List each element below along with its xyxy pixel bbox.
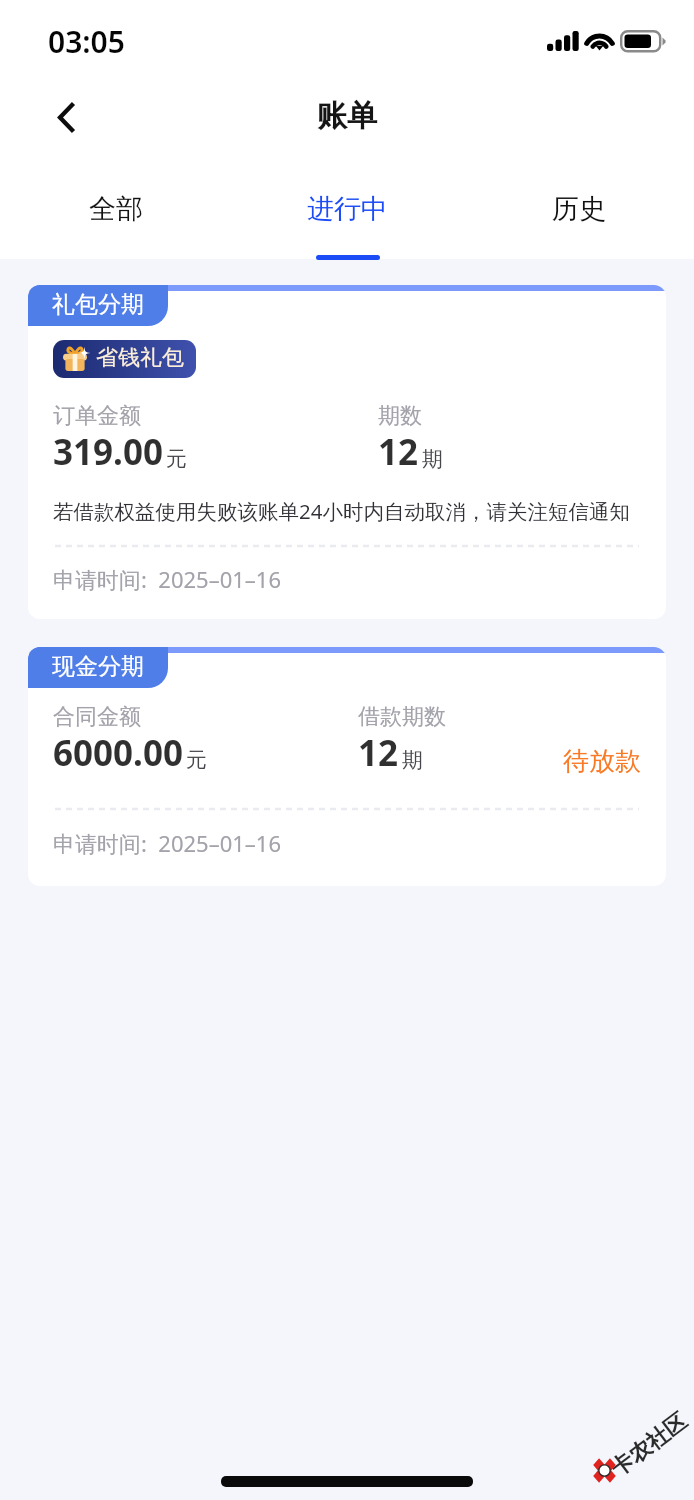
button[interactable]: 现金分期 [28, 647, 666, 886]
staticText: 若借款权益使用失败该账单24小时内自动取消，请关注短信通知 [53, 497, 630, 525]
button[interactable]: 全部 [0, 162, 232, 262]
staticText: 借款期数 [358, 703, 446, 731]
staticText: 合同金额 [53, 703, 141, 731]
staticText: 卡农社区 [605, 1407, 692, 1483]
staticText: 全部 [89, 192, 143, 226]
staticText: 待放款 [563, 745, 641, 778]
staticText: 申请时间: 2025–01–16 [53, 828, 282, 858]
staticText: 元 [166, 446, 187, 472]
button[interactable]: 礼包分期 [28, 285, 666, 619]
staticText: 现金分期 [52, 652, 144, 681]
staticText: 历史 [552, 192, 606, 226]
button[interactable]: 历史 [463, 162, 694, 262]
staticText: 期 [402, 747, 423, 773]
staticText: 申请时间: 2025–01–16 [53, 564, 282, 594]
staticText: 账单 [317, 97, 377, 135]
button[interactable]: 进行中 [232, 162, 463, 262]
staticText: 期 [422, 446, 443, 472]
staticText: 12 [358, 729, 399, 777]
staticText: 03:05 [48, 21, 125, 62]
button[interactable]: Back [38, 89, 94, 145]
staticText: 省钱礼包 [96, 344, 184, 372]
staticText: 订单金额 [53, 402, 141, 430]
staticText: 12 [378, 428, 419, 476]
staticText: 319.00 [53, 428, 163, 476]
staticText: 进行中 [307, 192, 388, 226]
staticText: 期数 [378, 402, 422, 430]
staticText: 礼包分期 [52, 290, 144, 319]
staticText: 元 [186, 747, 207, 773]
staticText: 6000.00 [53, 729, 183, 777]
